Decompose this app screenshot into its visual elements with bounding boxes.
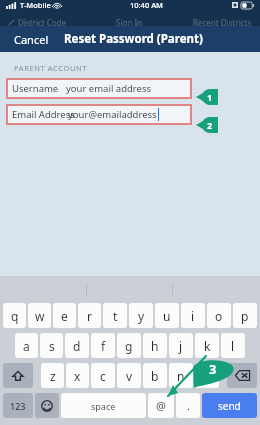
button[interactable]: Delete: [227, 363, 257, 388]
button[interactable]: Shift: [3, 363, 33, 388]
staticText: 2: [207, 119, 213, 131]
staticText: z: [50, 368, 56, 384]
staticText: g: [125, 338, 133, 354]
button[interactable]: r: [78, 303, 101, 328]
button[interactable]: y: [129, 303, 153, 328]
button[interactable]: a: [15, 333, 38, 358]
staticText: j: [179, 338, 183, 354]
button[interactable]: Email Address: [6, 104, 192, 125]
staticText: 123: [10, 400, 26, 412]
staticText: w: [35, 308, 45, 324]
staticText: @: [156, 398, 166, 413]
button[interactable]: o: [207, 303, 231, 328]
button[interactable]: e: [53, 303, 76, 328]
button[interactable]: x: [66, 363, 89, 388]
button[interactable]: Cancel: [0, 27, 55, 52]
button[interactable]: f: [91, 333, 115, 358]
staticText: h: [151, 338, 159, 354]
staticText: o: [215, 308, 223, 324]
staticText: T-Mobile: [20, 0, 51, 10]
button[interactable]: s: [40, 333, 63, 358]
staticText: p: [241, 308, 249, 324]
staticText: v: [126, 368, 133, 384]
button[interactable]: n: [169, 363, 193, 388]
button[interactable]: u: [155, 303, 179, 328]
button[interactable]: g: [117, 333, 141, 358]
button[interactable]: h: [143, 333, 167, 358]
staticText: i: [191, 308, 195, 324]
staticText: 1: [207, 91, 213, 103]
button[interactable]: t: [103, 303, 127, 328]
staticText: Reset Password (Parent): [64, 31, 203, 47]
button[interactable]: b: [143, 363, 167, 388]
staticText: send: [218, 399, 241, 413]
staticText: b: [151, 368, 159, 384]
staticText: Cancel: [14, 32, 49, 47]
button[interactable]: w: [28, 303, 51, 328]
button[interactable]: c: [91, 363, 115, 388]
staticText: t: [113, 308, 118, 324]
staticText: Sign In: [116, 17, 143, 28]
staticText: d: [73, 338, 81, 354]
button[interactable]: d: [65, 333, 89, 358]
button[interactable]: Emoji: [35, 393, 59, 418]
staticText: Username: [12, 82, 59, 95]
button[interactable]: v: [117, 363, 141, 388]
staticText: District Code: [18, 17, 67, 28]
staticText: l: [231, 338, 235, 354]
button[interactable]: m: [195, 363, 219, 388]
staticText: x: [74, 368, 81, 384]
button[interactable]: l: [221, 333, 245, 358]
staticText: a: [23, 338, 30, 354]
button[interactable]: z: [41, 363, 64, 388]
staticText: r: [87, 308, 92, 324]
button[interactable]: send: [202, 393, 257, 418]
staticText: q: [11, 308, 19, 324]
staticText: .: [187, 398, 190, 413]
staticText: e: [61, 308, 68, 324]
button[interactable]: j: [169, 333, 193, 358]
staticText: Recent Districts: [193, 17, 252, 28]
staticText: m: [201, 368, 213, 384]
staticText: c: [100, 368, 106, 384]
button[interactable]: p: [233, 303, 257, 328]
button[interactable]: Username: [6, 78, 192, 99]
button[interactable]: .: [176, 393, 200, 418]
staticText: your@emailaddress: [68, 108, 157, 121]
staticText: u: [163, 308, 171, 324]
button[interactable]: space: [61, 393, 146, 418]
staticText: PARENT ACCOUNT: [14, 63, 88, 73]
staticText: f: [101, 338, 106, 354]
staticText: space: [91, 400, 116, 412]
staticText: Email Address: [12, 108, 75, 121]
staticText: 10:40 AM: [130, 0, 163, 10]
staticText: k: [204, 338, 211, 354]
staticText: y: [138, 308, 145, 324]
button[interactable]: 123: [3, 393, 33, 418]
button[interactable]: i: [181, 303, 205, 328]
staticText: s: [49, 338, 55, 354]
button[interactable]: @: [148, 393, 174, 418]
button[interactable]: k: [195, 333, 219, 358]
staticText: your email address: [66, 82, 152, 95]
staticText: 3: [209, 360, 217, 378]
staticText: n: [177, 368, 185, 384]
button[interactable]: q: [3, 303, 26, 328]
